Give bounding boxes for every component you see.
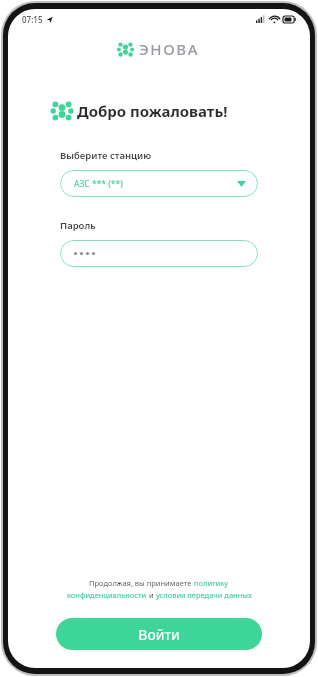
staticText: 07:15 <box>22 14 43 25</box>
staticText: конфиденциальности <box>67 590 147 600</box>
staticText: и <box>147 590 156 600</box>
staticText: политику <box>194 578 229 588</box>
staticText: Пароль <box>60 219 96 232</box>
button[interactable] <box>60 240 258 267</box>
button[interactable]: Войти <box>56 618 262 650</box>
button[interactable]: конфиденциальности <box>67 590 147 600</box>
staticText: ЭНОВА <box>139 39 200 59</box>
staticText: Выберите станцию <box>60 149 152 162</box>
button[interactable]: политику <box>194 578 229 588</box>
other: Open station list <box>237 181 246 187</box>
staticText: условия передачи данных <box>156 590 252 600</box>
button[interactable]: условия передачи данных <box>156 590 252 600</box>
staticText: Добро пожаловать! <box>77 101 228 121</box>
button[interactable]: АЗС *** (**) <box>60 170 258 197</box>
staticText: Войти <box>138 625 180 644</box>
staticText: АЗС *** (**) <box>74 178 123 190</box>
staticText: Продолжая, вы принимаете <box>89 578 194 588</box>
